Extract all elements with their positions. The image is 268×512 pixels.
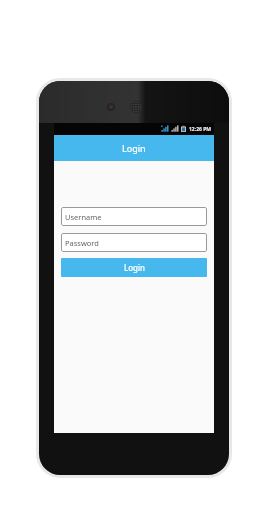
staticText: Password [65, 238, 99, 248]
staticText: 12:26 PM [189, 126, 211, 133]
staticText: Login [122, 142, 146, 154]
button[interactable]: Username [61, 207, 207, 226]
staticText: Login [124, 262, 145, 273]
button[interactable]: Password [61, 233, 207, 252]
button[interactable]: Login [61, 258, 207, 277]
staticText: Username [65, 212, 102, 222]
